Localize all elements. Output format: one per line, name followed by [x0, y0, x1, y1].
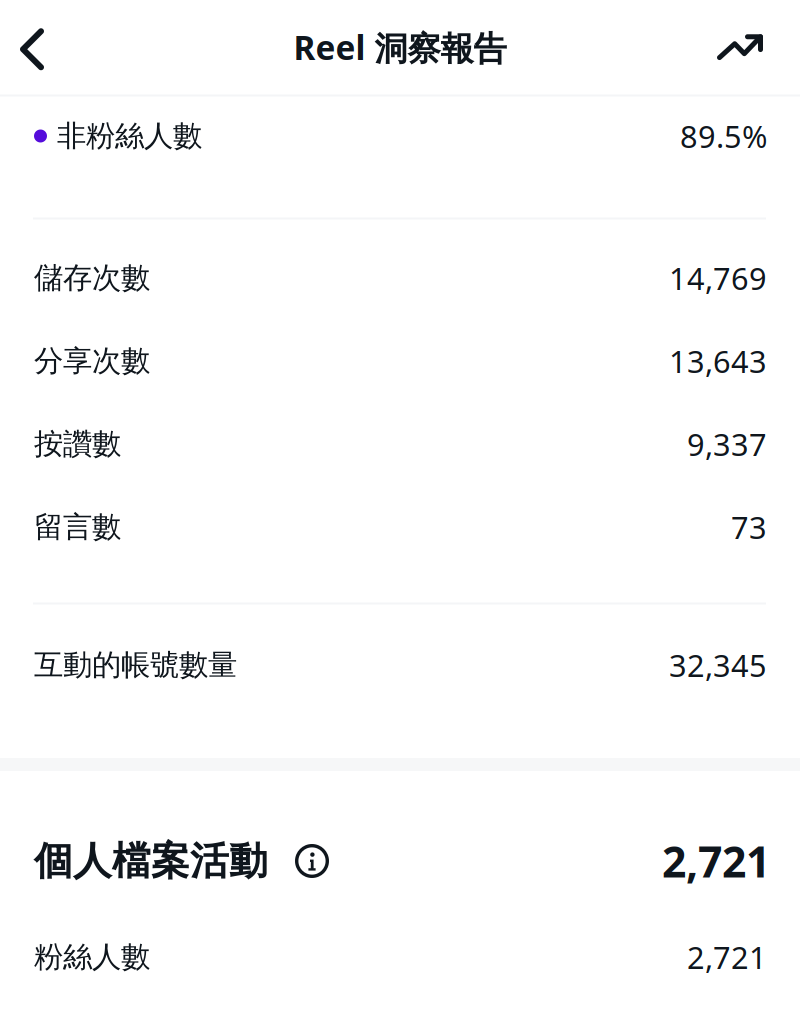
staticText: 分享次數 — [34, 343, 150, 379]
staticText: 14,769 — [669, 258, 767, 298]
staticText: 粉絲人數 — [34, 939, 150, 975]
staticText: 2,721 — [662, 833, 770, 889]
staticText: 9,337 — [687, 424, 767, 464]
staticText: 89.5% — [680, 116, 767, 156]
staticText: Reel 洞察報告 — [293, 25, 506, 69]
staticText: 按讚數 — [34, 426, 121, 462]
staticText: 2,721 — [687, 937, 767, 977]
staticText: 73 — [731, 507, 767, 547]
button[interactable]: Back — [0, 9, 60, 85]
staticText: 個人檔案活動 — [34, 837, 268, 885]
staticText: 32,345 — [669, 645, 767, 685]
staticText: 互動的帳號數量 — [34, 647, 237, 683]
button[interactable]: Trends — [701, 16, 800, 78]
staticText: 非粉絲人數 — [57, 118, 202, 154]
button[interactable]: About profile activity — [295, 844, 329, 878]
staticText: 儲存次數 — [34, 260, 150, 296]
staticText: 留言數 — [34, 509, 121, 545]
staticText: 13,643 — [669, 341, 767, 381]
